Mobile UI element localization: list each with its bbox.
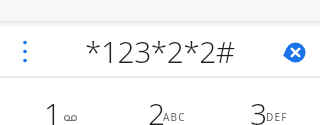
button[interactable] xyxy=(5,31,45,71)
staticText: 3 xyxy=(250,93,268,125)
button[interactable]: 2 xyxy=(106,79,213,125)
staticText: DEF xyxy=(266,110,288,124)
button[interactable] xyxy=(277,36,311,70)
button[interactable]: 1 xyxy=(0,79,106,125)
staticText: ABC xyxy=(163,110,186,124)
staticText: 1 xyxy=(44,93,62,125)
button[interactable]: 3 xyxy=(213,79,320,125)
staticText: 2 xyxy=(148,93,166,125)
staticText: *123*2*2# xyxy=(85,31,235,72)
